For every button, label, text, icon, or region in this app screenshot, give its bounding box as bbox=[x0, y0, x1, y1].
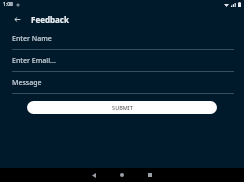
button[interactable]: Home bbox=[108, 168, 136, 182]
button[interactable]: Enter Name bbox=[0, 34, 244, 50]
staticText: Feedback bbox=[31, 14, 69, 25]
button[interactable]: Recent apps bbox=[136, 168, 164, 182]
staticText: Enter Email... bbox=[12, 56, 56, 66]
button[interactable]: Back bbox=[11, 13, 24, 26]
button[interactable]: SUBMIT bbox=[27, 101, 217, 114]
staticText: Enter Name bbox=[12, 34, 52, 44]
staticText: Message bbox=[12, 78, 42, 88]
button[interactable]: Message bbox=[0, 78, 244, 94]
button[interactable]: Enter Email... bbox=[0, 56, 244, 72]
button[interactable]: Back bbox=[80, 168, 108, 182]
staticText: SUBMIT bbox=[112, 104, 133, 111]
staticText: 1:08 bbox=[3, 1, 13, 8]
